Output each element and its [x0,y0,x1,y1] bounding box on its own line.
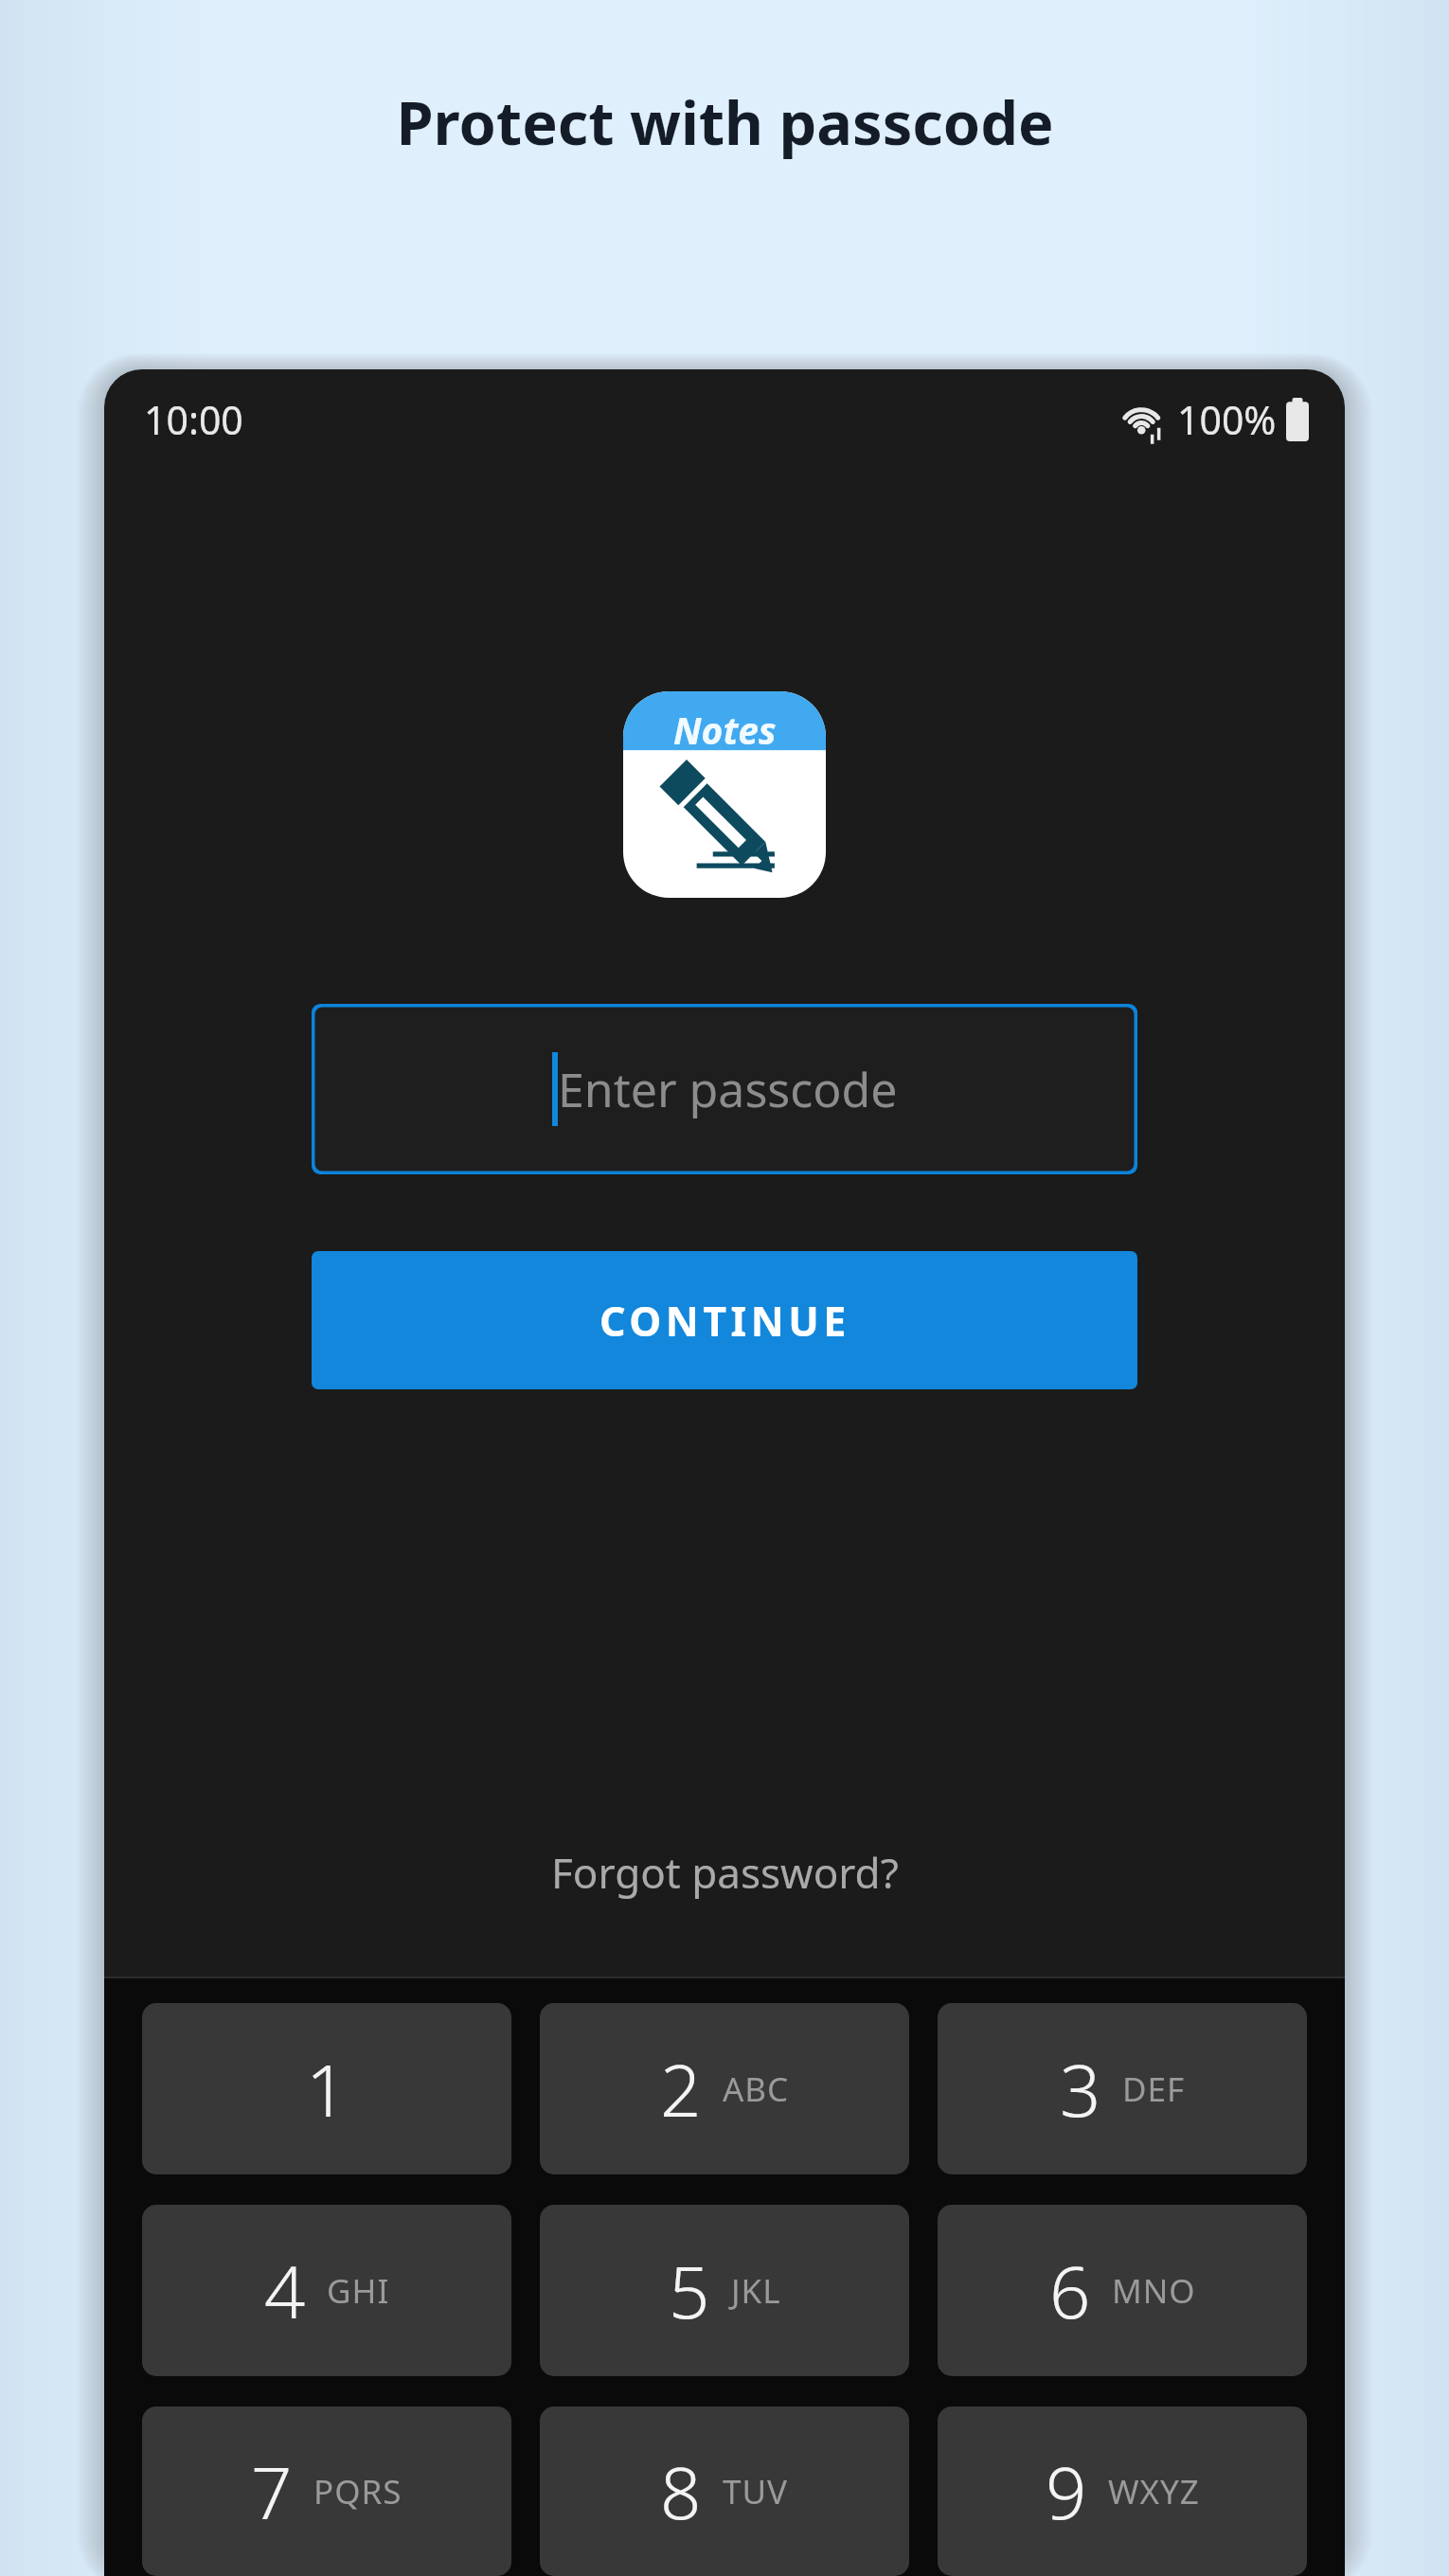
button[interactable]: 9 [938,2406,1307,2576]
staticText: 10:00 [144,393,243,446]
button[interactable]: 7 [142,2406,511,2576]
staticText: 2 [660,2040,702,2138]
staticText: 8 [660,2442,702,2541]
staticText: 5 [669,2242,710,2340]
staticText: DEF [1122,2066,1186,2112]
staticText: PQRS [313,2469,402,2514]
staticText: 6 [1049,2242,1091,2340]
button[interactable]: 1 [142,2003,511,2174]
staticText: Notes [673,705,777,755]
button[interactable]: 4 [142,2205,511,2376]
staticText: CONTINUE [599,1293,850,1349]
button[interactable]: 2 [540,2003,909,2174]
staticText: 4 [264,2242,306,2340]
staticText: Protect with passcode [396,81,1054,163]
button[interactable]: CONTINUE [312,1251,1137,1389]
staticText: 7 [251,2442,293,2541]
staticText: 3 [1060,2040,1101,2138]
button[interactable]: Forgot password? [519,1827,931,1918]
button[interactable]: 5 [540,2205,909,2376]
button[interactable]: 3 [938,2003,1307,2174]
staticText: GHI [327,2268,390,2314]
other: Notes app icon [623,691,826,898]
staticText: WXYZ [1108,2469,1200,2514]
staticText: 100% [1177,393,1277,446]
button[interactable]: 8 [540,2406,909,2576]
staticText: ABC [723,2066,790,2112]
staticText: 1 [306,2040,348,2138]
staticText: TUV [723,2469,789,2514]
button[interactable]: Enter passcode [312,1004,1137,1174]
button[interactable]: 6 [938,2205,1307,2376]
staticText: Enter passcode [558,1057,898,1121]
staticText: Forgot password? [551,1844,899,1901]
staticText: JKL [731,2268,781,2314]
staticText: 9 [1046,2442,1087,2541]
staticText: MNO [1112,2268,1196,2314]
